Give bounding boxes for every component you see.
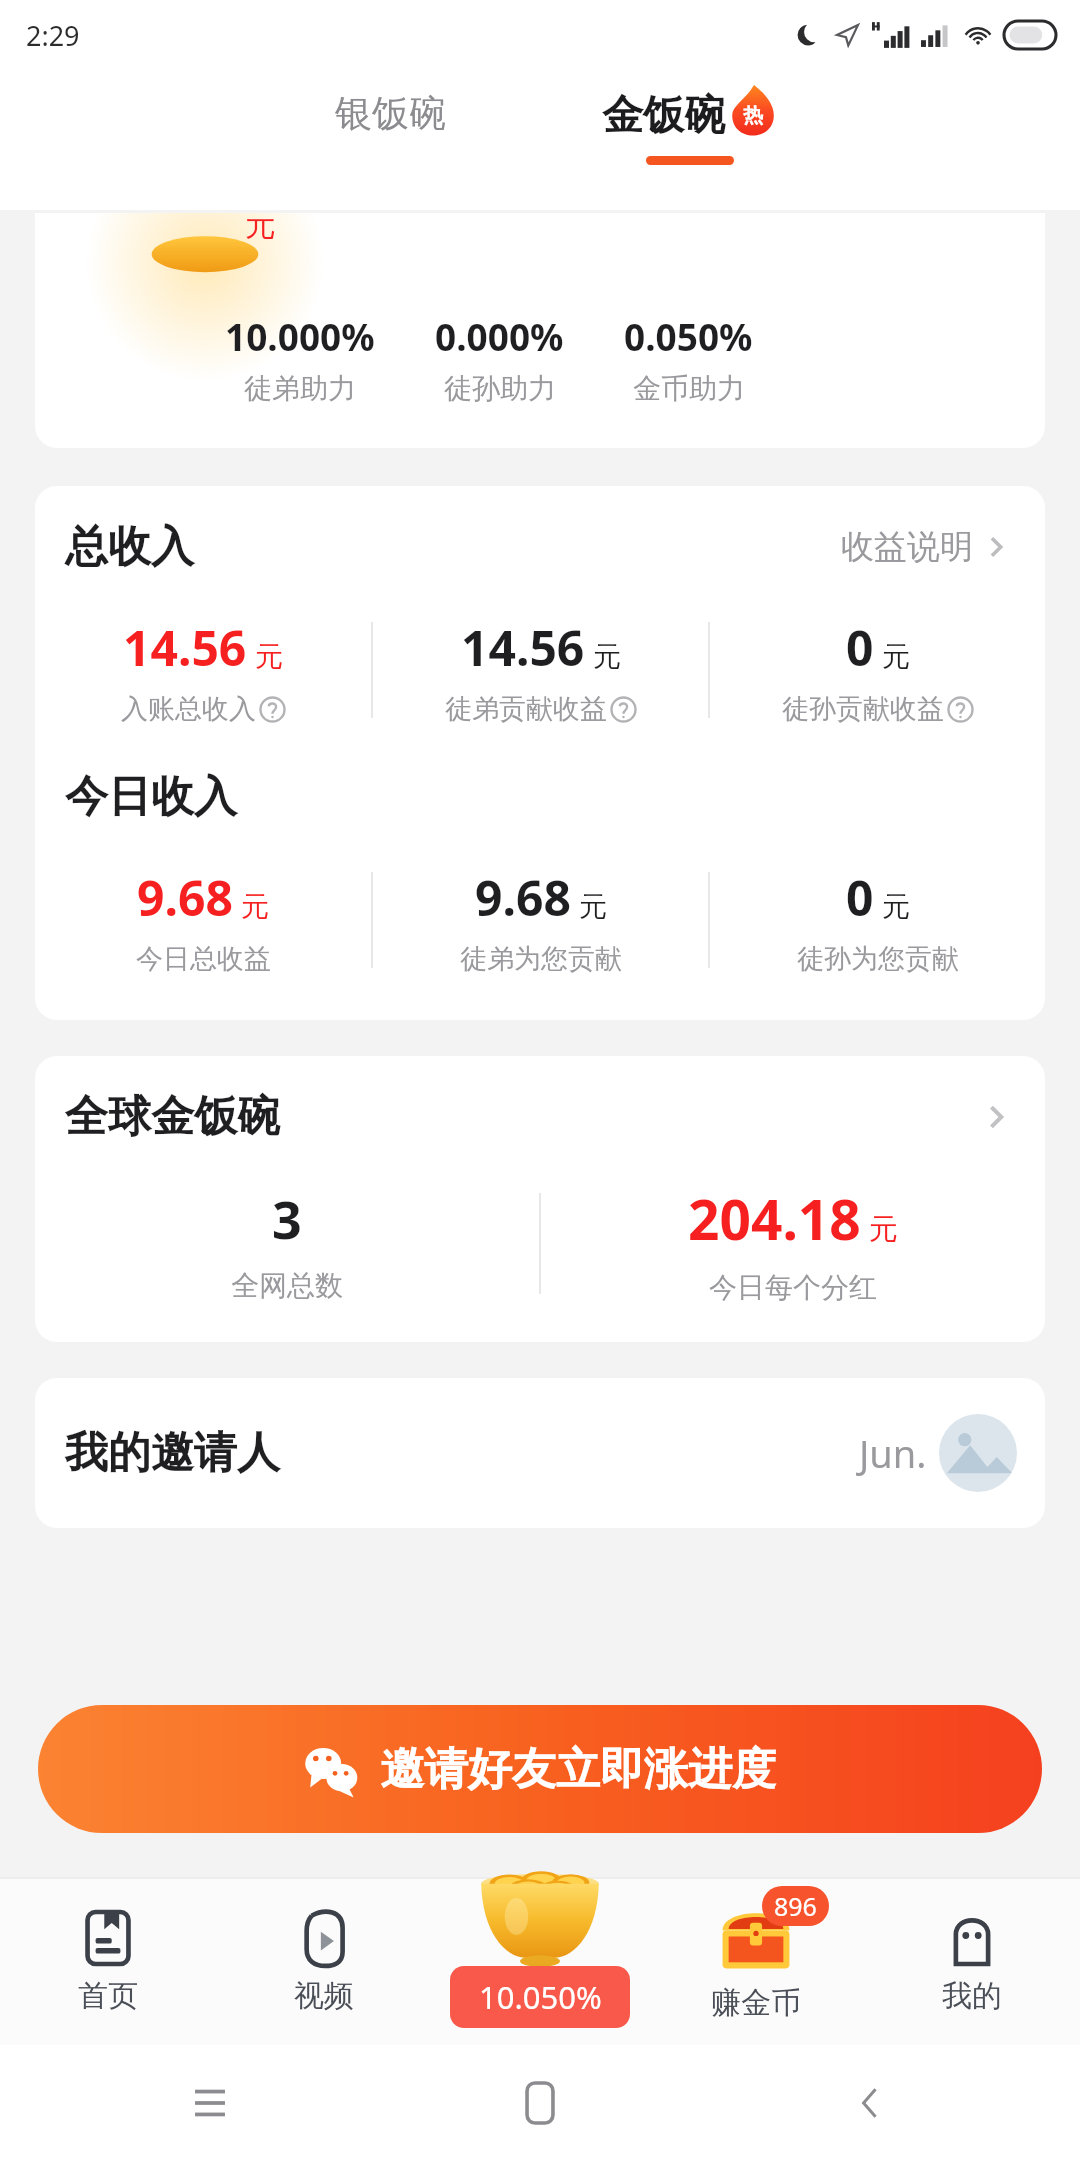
staticText: 徒弟为您贡献	[460, 942, 622, 976]
staticText: 0	[846, 865, 874, 930]
staticText: 徒弟助力	[244, 371, 356, 406]
staticText: 全网总数	[231, 1268, 343, 1303]
staticText: 金币助力	[633, 371, 745, 406]
staticText: Jun.	[859, 1427, 927, 1479]
staticText: 视频	[294, 1977, 354, 2015]
staticText: 9.68	[475, 865, 571, 930]
staticText: 元	[882, 889, 910, 924]
staticText: 9.68	[137, 865, 233, 930]
staticText: 14.56	[461, 615, 585, 680]
staticText: 10.050%	[479, 1976, 602, 2018]
button[interactable]: Recents	[45, 2045, 375, 2160]
staticText: 元	[593, 639, 621, 674]
staticText: 首页	[78, 1977, 138, 2015]
staticText: 总收入	[65, 520, 194, 574]
button[interactable]: 金饭碗	[540, 70, 840, 210]
button[interactable]: 邀请好友立即涨进度	[38, 1705, 1042, 1833]
staticText: 元	[245, 213, 276, 244]
staticText: 我的邀请人	[65, 1426, 280, 1480]
button[interactable]: 我的	[864, 1877, 1080, 2045]
staticText: 0.000%	[435, 311, 564, 361]
staticText: 元	[882, 639, 910, 674]
button[interactable]: Back	[705, 2045, 1035, 2160]
staticText: 0	[846, 615, 874, 680]
staticText: 邀请好友立即涨进度	[380, 1742, 776, 1797]
button[interactable]: 全球金饭碗	[35, 1056, 1045, 1342]
staticText: 入账总收入	[121, 692, 256, 726]
button[interactable]: 视频	[216, 1877, 432, 2045]
staticText: 全球金饭碗	[65, 1090, 280, 1144]
staticText: 元	[579, 889, 607, 924]
staticText: 14.56	[123, 615, 247, 680]
button[interactable]: 银饭碗	[240, 70, 540, 210]
staticText: 收益说明	[841, 526, 973, 568]
staticText: 0.050%	[624, 311, 753, 361]
staticText: 徒孙助力	[444, 371, 556, 406]
button[interactable]: 金饭碗 10.050%	[432, 1877, 648, 2045]
staticText: 金饭碗	[602, 90, 725, 142]
staticText: 银饭碗	[335, 90, 446, 137]
staticText: 我的	[942, 1977, 1002, 2015]
button[interactable]: Home	[375, 2045, 705, 2160]
button[interactable]: 896	[648, 1877, 864, 2045]
button[interactable]: 首页	[0, 1877, 216, 2045]
staticText: 徒弟贡献收益	[445, 692, 607, 726]
staticText: 徒孙贡献收益	[782, 692, 944, 726]
staticText: 热	[743, 103, 763, 128]
staticText: 徒孙为您贡献	[797, 942, 959, 976]
staticText: 10.000%	[225, 311, 375, 361]
staticText: 元	[241, 889, 269, 924]
button[interactable]: 收益说明	[835, 520, 1019, 574]
staticText: 元	[869, 1211, 898, 1248]
button[interactable]: 我的邀请人	[35, 1378, 1045, 1528]
staticText: 今日每个分红	[709, 1270, 877, 1305]
staticText: 元	[255, 639, 283, 674]
staticText: 今日总收益	[136, 942, 271, 976]
staticText: 赚金币	[711, 1984, 801, 2022]
staticText: 896	[774, 1889, 817, 1923]
staticText: 2:29	[26, 17, 80, 54]
staticText: 3	[272, 1183, 302, 1254]
staticText: 204.18	[688, 1181, 861, 1256]
staticText: 今日收入	[65, 770, 237, 824]
